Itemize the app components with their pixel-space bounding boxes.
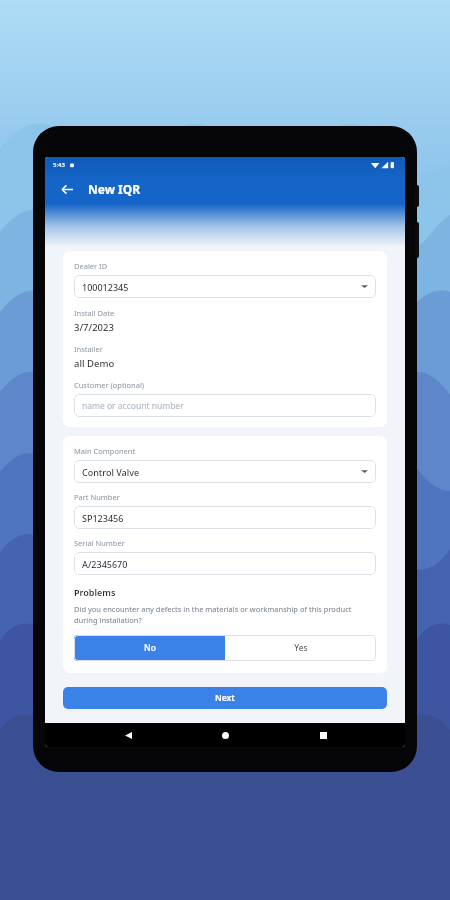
- staticText: name or account number: [82, 400, 184, 412]
- button[interactable]: A/2345670: [74, 552, 376, 575]
- button[interactable]: Back: [113, 723, 143, 747]
- button[interactable]: 100012345: [74, 275, 376, 298]
- staticText: 100012345: [82, 281, 129, 293]
- staticText: Control Valve: [82, 466, 140, 478]
- staticText: Yes: [294, 642, 308, 654]
- staticText: Part Number: [74, 492, 120, 502]
- staticText: Next: [215, 692, 235, 704]
- staticText: Problems: [74, 586, 116, 598]
- staticText: all Demo: [74, 357, 115, 370]
- staticText: No: [144, 642, 156, 654]
- staticText: Dealer ID: [74, 261, 108, 271]
- staticText: Main Component: [74, 446, 136, 456]
- staticText: Did you encounter any defects in the mat…: [74, 604, 376, 625]
- staticText: New IQR: [88, 181, 141, 197]
- staticText: Serial Number: [74, 538, 125, 548]
- staticText: A/2345670: [82, 558, 128, 570]
- button[interactable]: No: [74, 635, 225, 661]
- button[interactable]: Yes: [225, 635, 376, 661]
- staticText: 5:43: [53, 161, 65, 169]
- staticText: 3/7/2023: [74, 321, 114, 334]
- button[interactable]: Next: [63, 687, 387, 709]
- button[interactable]: SP123456: [74, 506, 376, 529]
- staticText: Install Date: [74, 308, 115, 318]
- staticText: Installer: [74, 344, 103, 354]
- staticText: Customer (optional): [74, 380, 145, 390]
- button[interactable]: Back: [55, 177, 79, 201]
- button[interactable]: Control Valve: [74, 460, 376, 483]
- staticText: SP123456: [82, 512, 124, 524]
- button[interactable]: Home: [210, 723, 240, 747]
- button[interactable]: name or account number: [74, 394, 376, 417]
- button[interactable]: Recent apps: [308, 723, 338, 747]
